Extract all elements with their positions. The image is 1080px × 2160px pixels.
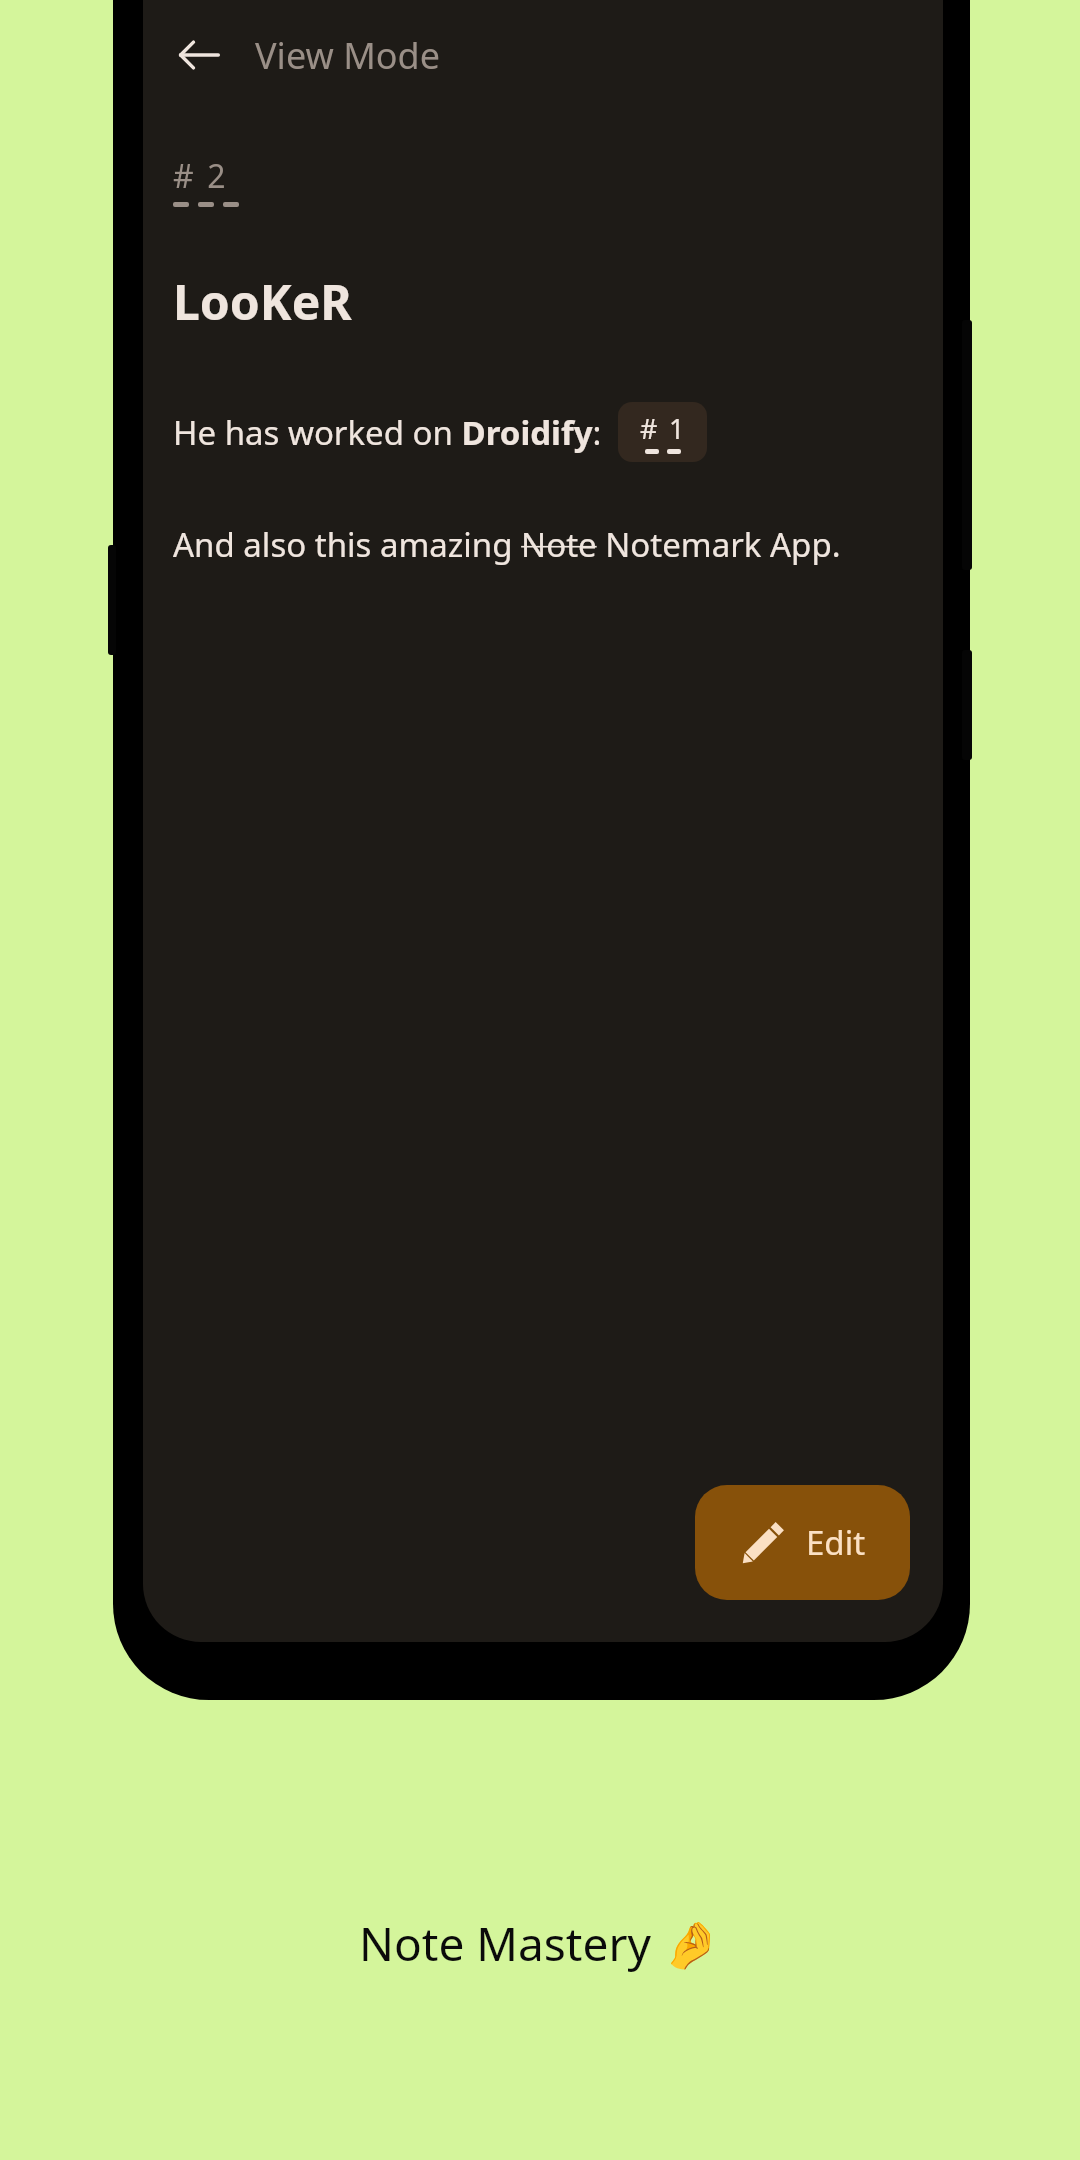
- button[interactable]: # 1: [618, 402, 707, 462]
- staticText: Note Mastery 🤌: [359, 1912, 721, 1975]
- staticText: He has worked on Droidify:: [173, 410, 602, 455]
- staticText: # 1: [640, 410, 685, 447]
- staticText: And also this amazing Note Notemark App.: [173, 522, 841, 567]
- button[interactable]: Edit: [695, 1485, 910, 1600]
- button[interactable]: Back: [161, 17, 237, 93]
- staticText: # 2: [173, 154, 226, 198]
- staticText: View Mode: [255, 31, 441, 80]
- staticText: LooKeR: [173, 269, 352, 334]
- staticText: Edit: [806, 1520, 866, 1565]
